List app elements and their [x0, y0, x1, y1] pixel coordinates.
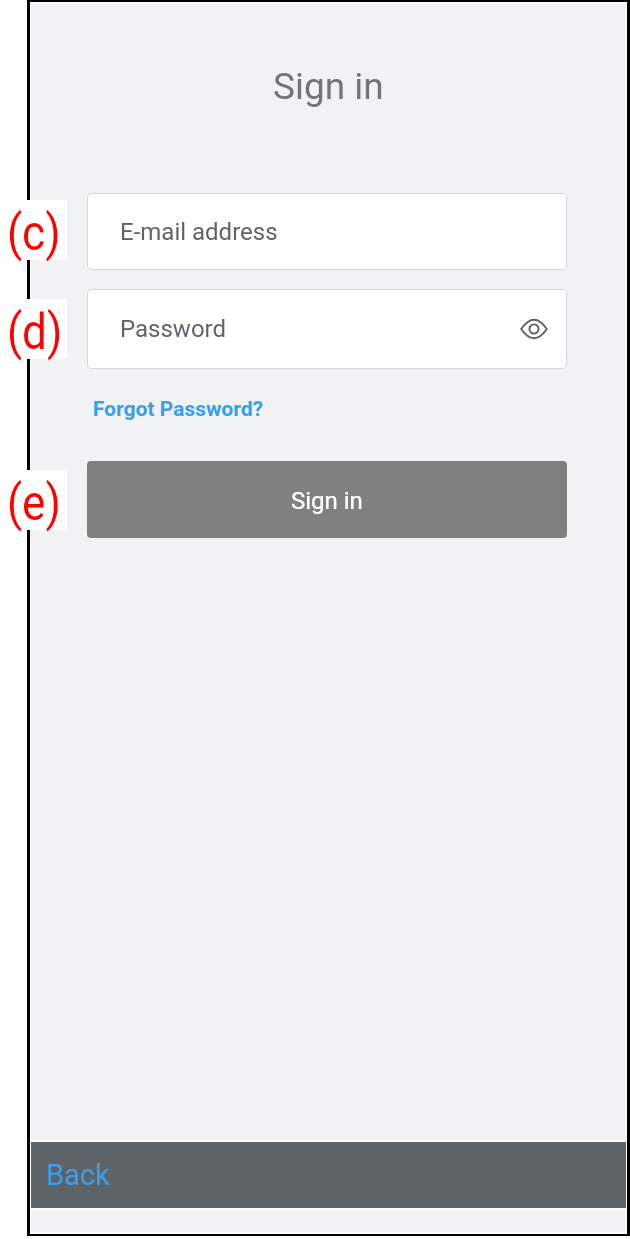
staticText: Sign in [273, 65, 384, 108]
button[interactable]: Show password [515, 310, 553, 348]
button[interactable]: Password [87, 289, 567, 369]
staticText: E-mail address [120, 218, 278, 246]
staticText: (e) [7, 473, 61, 532]
staticText: Sign in [291, 487, 363, 515]
staticText: Back [46, 1158, 110, 1192]
staticText: (c) [7, 203, 61, 262]
button[interactable]: E-mail address [87, 193, 567, 270]
button[interactable]: Sign in [87, 461, 567, 538]
button[interactable]: Back [31, 1142, 626, 1208]
staticText: Forgot Password? [93, 397, 264, 422]
staticText: (d) [7, 302, 63, 361]
button[interactable]: Forgot Password? [87, 393, 270, 426]
staticText: Password [120, 315, 227, 343]
